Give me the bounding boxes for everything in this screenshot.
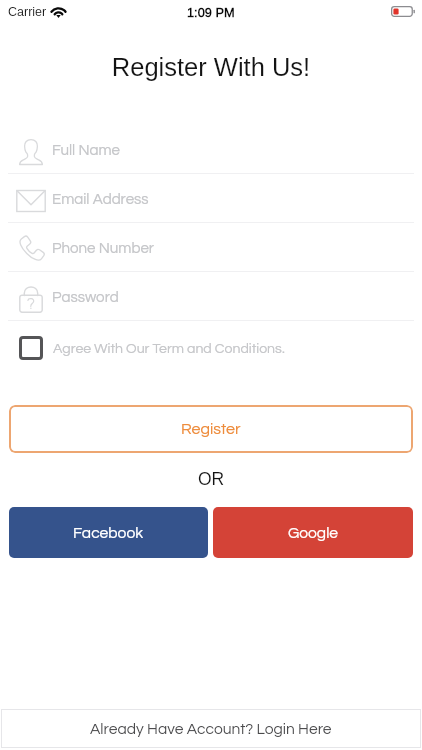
staticText: Carrier [8,5,47,19]
staticText: Facebook [73,525,144,541]
button[interactable]: Register [9,405,413,453]
button[interactable]: Facebook [9,507,208,558]
staticText: Full Name [52,143,120,159]
staticText: Register With Us! [0,53,422,81]
button[interactable]: Full Name [0,125,422,174]
staticText: Password [52,290,119,306]
button[interactable]: Agree With Our Term and Conditions. [0,321,422,370]
staticText: Email Address [52,192,149,208]
staticText: Register [181,421,241,437]
button[interactable]: Email Address [0,174,422,223]
button[interactable]: Google [213,507,413,558]
staticText: Already Have Account? Login Here [90,721,332,737]
staticText: OR [0,469,422,489]
other: Battery [391,6,416,17]
staticText: 1:09 PM [187,5,235,19]
button[interactable]: Password [0,272,422,321]
staticText: Phone Number [52,241,155,257]
button[interactable]: Phone Number [0,223,422,272]
button[interactable]: Already Have Account? Login Here [1,709,421,748]
staticText: Google [288,525,339,541]
staticText: Agree With Our Term and Conditions. [53,341,285,356]
